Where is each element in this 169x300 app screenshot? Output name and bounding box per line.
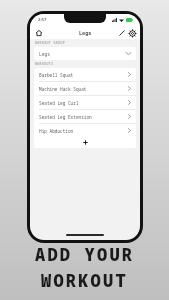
button[interactable]: Seated Leg Curl [34, 96, 136, 109]
staticText: 2:57 [38, 17, 47, 23]
button[interactable]: Settings [127, 28, 137, 38]
button[interactable]: Legs [34, 47, 136, 60]
staticText: Legs [39, 51, 51, 57]
button[interactable]: Seated Leg Extension [34, 110, 136, 123]
button[interactable]: Home [34, 28, 44, 38]
staticText: WORKOUT GROUP [35, 41, 66, 45]
button[interactable]: Hip Abduction [34, 124, 136, 137]
button[interactable]: Machine Hack Squat [34, 82, 136, 95]
staticText: ADD YOUR [35, 243, 135, 266]
staticText: Seated Leg Curl [39, 100, 79, 106]
staticText: Hip Abduction [39, 128, 74, 134]
staticText: WORKOUTS [35, 62, 54, 66]
staticText: Legs [79, 29, 92, 36]
button[interactable]: Edit [117, 28, 127, 38]
staticText: Barbell Squat [39, 72, 74, 78]
staticText: Seated Leg Extension [39, 114, 92, 120]
staticText: Machine Hack Squat [39, 86, 87, 92]
button[interactable]: Add workout [34, 137, 136, 148]
button[interactable]: Barbell Squat [34, 68, 136, 81]
staticText: WORKOUT [41, 269, 128, 292]
